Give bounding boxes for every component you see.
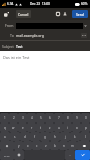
staticText: 2 (13, 116, 15, 120)
button[interactable]: 3 (18, 113, 27, 123)
button[interactable]: r (27, 123, 36, 132)
button[interactable]: q (0, 123, 9, 132)
button[interactable]: e (18, 123, 27, 132)
staticText: 7 (58, 116, 60, 120)
staticText: 5 (40, 116, 42, 120)
staticText: v (45, 144, 47, 148)
staticText: z (49, 126, 51, 130)
staticText: 3 (22, 116, 24, 120)
staticText: Send (76, 12, 84, 16)
staticText: d (24, 135, 26, 139)
staticText: s (14, 135, 16, 139)
button[interactable]: mail.example.org (16, 31, 81, 40)
staticText: n (63, 144, 65, 148)
button[interactable]: 7 (54, 113, 63, 123)
staticText: g (44, 135, 46, 139)
button[interactable]: Discard draft (1, 9, 11, 19)
button[interactable]: 4 (27, 113, 36, 123)
button[interactable]: Send (72, 10, 88, 18)
staticText: i (67, 126, 68, 130)
button[interactable]: h (50, 132, 60, 141)
staticText: 60% (81, 2, 88, 6)
button[interactable]: Backspace (77, 141, 90, 150)
button[interactable]: Show Cc and Bcc (81, 33, 87, 38)
button[interactable]: a (0, 132, 10, 141)
button[interactable]: Shift (0, 141, 14, 150)
button[interactable]: ?123 (0, 150, 14, 160)
button[interactable]: 2 (9, 113, 18, 123)
staticText: j (65, 135, 66, 139)
button[interactable]: f (30, 132, 40, 141)
staticText: e (22, 126, 24, 130)
button[interactable]: y (14, 141, 23, 150)
button[interactable]: p (81, 123, 90, 132)
button[interactable]: 9 (72, 113, 81, 123)
button[interactable]: k (70, 132, 80, 141)
staticText: c (36, 144, 38, 148)
button[interactable]: Attach file (53, 9, 62, 19)
button[interactable]: z (45, 123, 54, 132)
staticText: 1 (4, 116, 6, 120)
button[interactable]: o (72, 123, 81, 132)
staticText: Dec 23 13:00 (30, 2, 50, 6)
button[interactable]: 8 (63, 113, 72, 123)
staticText: From (5, 23, 14, 28)
staticText: a (4, 135, 6, 139)
staticText: l (85, 135, 86, 139)
button[interactable]: 5 (36, 113, 45, 123)
staticText: k (74, 135, 76, 139)
staticText: r (31, 126, 33, 130)
staticText: f (34, 135, 36, 139)
button[interactable]: i (63, 123, 72, 132)
staticText: 6.94 (7, 2, 14, 6)
staticText: To (10, 33, 14, 38)
staticText: 0 (85, 116, 87, 120)
staticText: b (54, 144, 56, 148)
button[interactable]: Emoji (14, 150, 24, 160)
button[interactable]: j (60, 132, 70, 141)
button[interactable]: x (23, 141, 32, 150)
staticText: 6 (49, 116, 51, 120)
staticText: w (12, 126, 15, 130)
button[interactable]: 0 (81, 113, 90, 123)
button[interactable]: m (68, 141, 77, 150)
staticText: Cancel (18, 12, 29, 16)
staticText: h (54, 135, 56, 139)
button[interactable]: b (50, 141, 59, 150)
button[interactable]: 1 (0, 113, 9, 123)
staticText: Test (16, 44, 23, 49)
staticText: m (71, 144, 74, 148)
button[interactable]: s (10, 132, 20, 141)
button[interactable]: Subject (0, 41, 90, 51)
button[interactable]: Add contacts (60, 9, 69, 19)
staticText: Das ist ein Test (3, 55, 30, 60)
staticText: 4 (31, 116, 33, 120)
button[interactable]: Send (75, 150, 90, 160)
button[interactable]: d (20, 132, 30, 141)
button[interactable]: n (59, 141, 68, 150)
staticText: ?123 (4, 154, 10, 157)
staticText: t (40, 126, 42, 130)
staticText: q (4, 126, 6, 130)
button[interactable]: Choose account (83, 23, 88, 29)
staticText: Subject (2, 44, 14, 49)
button[interactable]: 6 (45, 113, 54, 123)
button[interactable]: t (36, 123, 45, 132)
staticText: o (76, 126, 78, 130)
staticText: mail.example.org (16, 33, 44, 38)
button[interactable]: Cancel (16, 10, 31, 18)
button[interactable]: w (9, 123, 18, 132)
staticText: y (18, 144, 20, 148)
button[interactable]: Comma (65, 150, 75, 160)
button[interactable]: l (80, 132, 90, 141)
staticText: x (27, 144, 29, 148)
staticText: u (58, 126, 60, 130)
button[interactable]: c (32, 141, 41, 150)
staticText: p (85, 126, 87, 130)
button[interactable]: v (41, 141, 50, 150)
button[interactable]: g (40, 132, 50, 141)
staticText: 9 (76, 116, 78, 120)
button[interactable]: u (54, 123, 63, 132)
